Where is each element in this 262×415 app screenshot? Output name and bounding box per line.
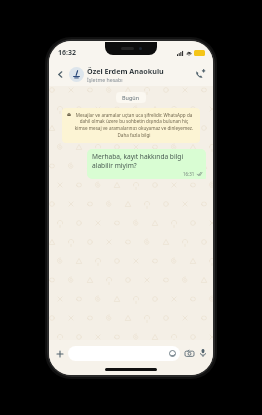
button[interactable]: Özel Erdem Anaokulu <box>87 66 192 83</box>
button[interactable]: Attach <box>53 347 66 360</box>
staticText: Bugün <box>122 94 140 101</box>
staticText: 16:31 <box>183 171 195 177</box>
button[interactable]: Add call <box>192 66 208 82</box>
staticText: İşletme hesabı <box>87 76 123 83</box>
button[interactable]: Camera <box>183 347 195 359</box>
staticText: Özel Erdem Anaokulu <box>87 66 164 76</box>
staticText: 16:32 <box>58 48 76 58</box>
button[interactable]: Back <box>54 68 66 80</box>
button[interactable] <box>68 346 180 361</box>
button[interactable]: Merhaba, kayıt hakkında bilgi alabilir m… <box>87 149 206 179</box>
button[interactable]: Voice message <box>197 347 209 359</box>
staticText: Mesajlar ve aramalar uçtan uca şifrelidi… <box>73 112 195 139</box>
staticText: Merhaba, kayıt hakkında bilgi alabilir m… <box>92 152 202 170</box>
